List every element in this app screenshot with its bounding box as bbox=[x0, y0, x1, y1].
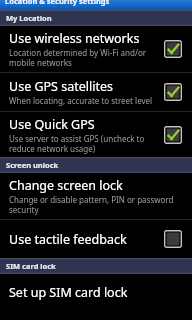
staticText: Use server to assist GPS (uncheck to red… bbox=[9, 133, 145, 154]
staticText: When locating, accurate to street level bbox=[9, 95, 153, 106]
staticText: Change screen lock bbox=[9, 177, 123, 194]
staticText: Use Quick GPS bbox=[9, 116, 95, 133]
button[interactable]: Use Quick GPS bbox=[0, 112, 192, 157]
button[interactable]: Use tactile feedback bbox=[0, 220, 192, 258]
staticText: Use GPS satellites bbox=[9, 78, 113, 95]
staticText: My Location bbox=[6, 13, 52, 23]
button[interactable]: Use wireless networks bbox=[0, 26, 192, 72]
staticText: Use tactile feedback bbox=[9, 231, 127, 248]
staticText: Location & security settings bbox=[5, 0, 110, 6]
staticText: SIM card lock bbox=[6, 261, 56, 271]
staticText: Change or disable pattern, PIN or passwo… bbox=[9, 194, 174, 215]
button[interactable]: Set up SIM card lock bbox=[0, 274, 192, 311]
button[interactable]: Use GPS satellites bbox=[0, 73, 192, 111]
staticText: Use wireless networks bbox=[9, 30, 140, 47]
staticText: Location determined by Wi-Fi and/or mobi… bbox=[9, 47, 147, 68]
staticText: Set up SIM card lock bbox=[9, 284, 128, 301]
button[interactable]: Change screen lock bbox=[0, 173, 192, 219]
staticText: Screen unlock bbox=[6, 160, 59, 170]
